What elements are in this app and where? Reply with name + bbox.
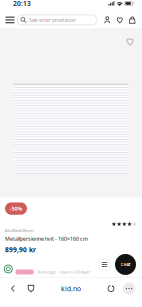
button[interactable]: Menu bbox=[3, 12, 17, 28]
staticText: 20:13 bbox=[13, 0, 31, 8]
staticText: -50% bbox=[9, 205, 22, 212]
staticText: 899,90 kr bbox=[5, 245, 36, 254]
button[interactable]: Back bbox=[4, 281, 22, 297]
button[interactable]: Søk etter produkter bbox=[17, 15, 97, 25]
button[interactable]: More bbox=[120, 281, 138, 297]
button[interactable]: CHAT bbox=[115, 254, 136, 275]
staticText: Metallpersienne hvit - 160×160 cm bbox=[5, 235, 88, 242]
staticText: kid.no bbox=[61, 284, 81, 293]
staticText: Alu Blind 25mm bbox=[5, 228, 34, 233]
staticText: CHAT bbox=[120, 262, 130, 267]
button[interactable]: Reader view bbox=[22, 281, 40, 297]
staticText: Bestselger · Leveres 2-4 dager bbox=[38, 269, 91, 275]
button[interactable]: Reload bbox=[102, 281, 120, 297]
button[interactable]: Favorites bbox=[113, 13, 126, 26]
button[interactable]: Add to favorites bbox=[122, 33, 138, 49]
button[interactable]: Cart bbox=[126, 13, 138, 26]
button[interactable]: Account bbox=[101, 13, 113, 26]
staticText: Søk etter produkter bbox=[29, 16, 76, 23]
button[interactable]: Options bbox=[99, 259, 110, 270]
